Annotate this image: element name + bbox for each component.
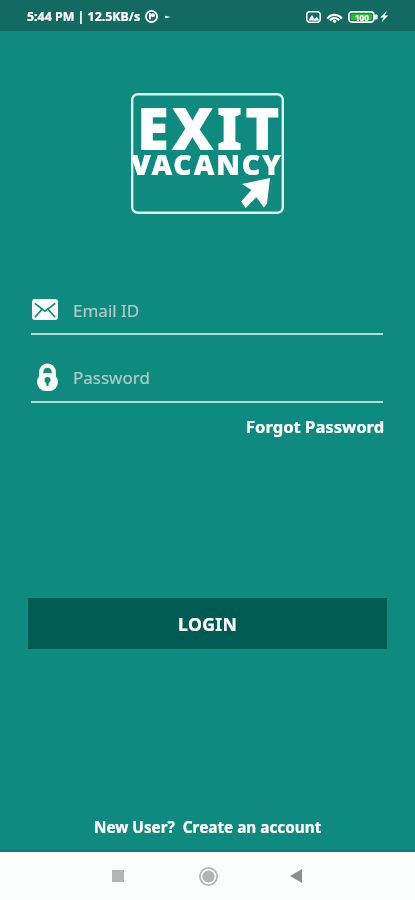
button[interactable]: LOGIN [28,598,387,649]
staticText: LOGIN [178,612,238,636]
staticText: 100 [355,12,369,23]
staticText: 5:44 PM | 12.5KB/s [27,8,141,25]
staticText: VACANCY [131,145,283,184]
button[interactable]: Back [277,852,415,900]
staticText: EXIT [137,88,283,167]
button[interactable]: Recent apps [0,852,139,900]
other: Wi-Fi [326,10,343,23]
button[interactable]: Forgot Password [246,415,385,438]
staticText: Email ID [73,299,140,322]
button[interactable]: New User? Create an account [0,812,415,842]
other: Battery 100 percent [348,11,378,23]
staticText: Forgot Password [246,415,385,438]
other: Charging [379,10,389,23]
staticText: Password [73,366,150,389]
staticText: New User? Create an account [94,817,322,838]
other: Screenshot [306,11,321,23]
button[interactable]: Home [139,852,277,900]
